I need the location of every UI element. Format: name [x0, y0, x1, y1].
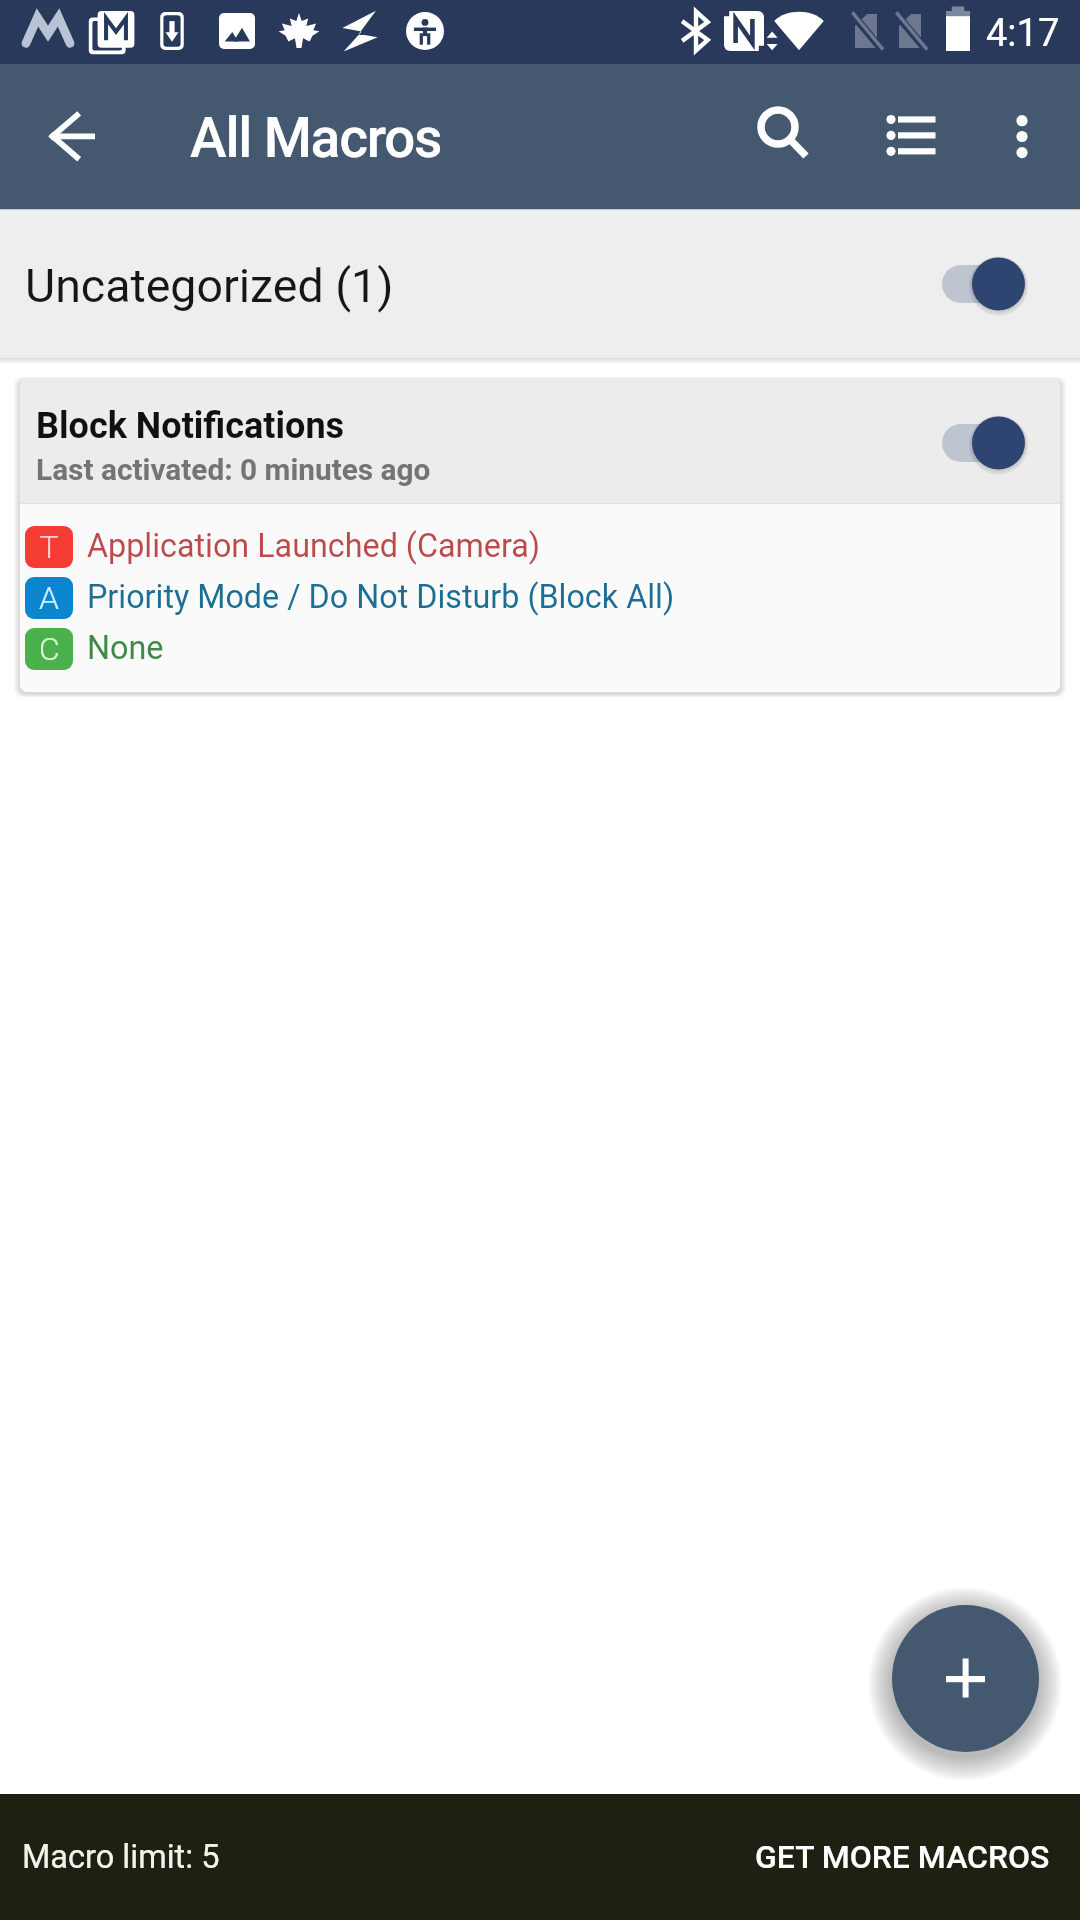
button[interactable]: Toggle enabled — [920, 408, 1030, 478]
button[interactable]: C — [20, 624, 1060, 675]
button[interactable]: T — [20, 522, 1060, 573]
staticText: Macro limit: 5 — [22, 1838, 220, 1876]
button[interactable]: Add macro — [892, 1605, 1039, 1752]
staticText: None — [87, 629, 164, 667]
button[interactable]: View as list — [866, 100, 950, 172]
staticText: Application Launched (Camera) — [87, 527, 541, 565]
button[interactable]: Search — [738, 100, 822, 172]
staticText: A — [39, 579, 59, 617]
staticText: 4:17 — [986, 11, 1060, 56]
staticText: All Macros — [190, 106, 442, 170]
button[interactable]: Block Notifications — [20, 378, 1060, 503]
staticText: T — [39, 528, 59, 566]
staticText: GET MORE MACROS — [755, 1838, 1050, 1876]
button[interactable]: More options — [988, 100, 1060, 172]
staticText: Uncategorized (1) — [25, 259, 394, 313]
button[interactable]: GET MORE MACROS — [716, 1794, 1080, 1920]
button[interactable]: A — [20, 573, 1060, 624]
button[interactable]: Toggle enabled — [920, 249, 1030, 319]
staticText: Priority Mode / Do Not Disturb (Block Al… — [87, 578, 675, 616]
staticText: Last activated: 0 minutes ago — [36, 452, 431, 487]
button[interactable]: Navigate up — [28, 100, 112, 172]
staticText: C — [39, 630, 60, 668]
button[interactable]: Uncategorized (1) — [0, 210, 1080, 358]
staticText: Block Notifications — [36, 405, 345, 447]
